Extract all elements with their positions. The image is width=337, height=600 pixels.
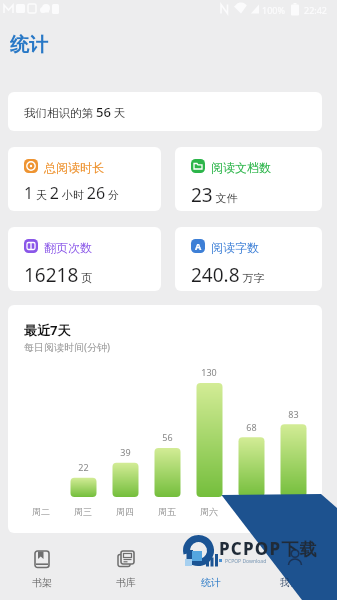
staticText: 周三 xyxy=(74,506,92,517)
staticText: 16218 页 xyxy=(24,262,93,288)
staticText: 56 xyxy=(162,431,173,443)
staticText: PCPOP Download xyxy=(225,558,267,565)
button[interactable]: A xyxy=(175,227,322,291)
staticText: 最近7天 xyxy=(24,321,71,339)
staticText: 周六 xyxy=(200,506,218,517)
staticText: 周四 xyxy=(116,506,134,517)
staticText: 统计 xyxy=(10,33,48,57)
staticText: 书架 xyxy=(32,576,52,589)
staticText: 22 xyxy=(78,461,89,473)
button[interactable]: 最近7天 xyxy=(8,305,322,533)
staticText: 统计 xyxy=(201,576,221,589)
staticText: 83 xyxy=(288,408,299,420)
staticText: 书库 xyxy=(116,576,136,589)
staticText: 39 xyxy=(120,446,131,458)
button[interactable]: 总阅读时长 xyxy=(8,147,161,211)
staticText: 22:42 xyxy=(304,4,328,16)
button[interactable]: 翻页次数 xyxy=(8,227,161,291)
button[interactable]: 阅读文档数 xyxy=(175,147,322,211)
staticText: 我们相识的第 56 天 xyxy=(24,103,126,121)
staticText: 240.8 万字 xyxy=(191,262,265,288)
staticText: 阅读字数 xyxy=(211,240,259,255)
staticText: 阅读文档数 xyxy=(211,160,271,175)
staticText: A xyxy=(195,240,202,252)
staticText: 130 xyxy=(201,366,217,378)
staticText: 每日阅读时间(分钟) xyxy=(24,340,110,354)
button[interactable]: 我 xyxy=(255,537,335,600)
staticText: 翻页次数 xyxy=(44,240,92,255)
staticText: 1 天 2 小时 26 分 xyxy=(24,182,119,204)
staticText: 23 文件 xyxy=(191,182,238,208)
button[interactable]: 书架 xyxy=(2,537,82,600)
staticText: 周二 xyxy=(32,506,50,517)
button[interactable]: 我们相识的第 56 天 xyxy=(8,92,322,131)
staticText: 周五 xyxy=(158,506,176,517)
staticText: 我 xyxy=(290,576,300,589)
staticText: 68 xyxy=(246,421,257,433)
staticText: PCPOP下载 xyxy=(219,537,318,560)
staticText: 100% xyxy=(262,4,285,16)
staticText: 我 xyxy=(280,576,290,589)
button[interactable]: 书库 xyxy=(86,537,166,600)
button[interactable]: 统计 xyxy=(171,537,251,600)
staticText: 总阅读时长 xyxy=(44,160,104,175)
